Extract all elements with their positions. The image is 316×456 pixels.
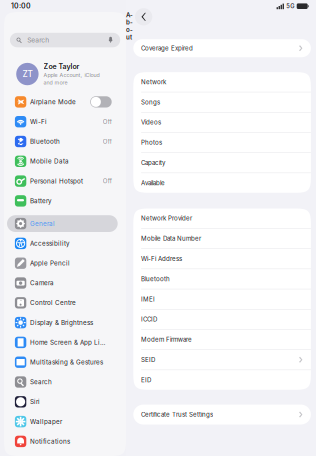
button[interactable]: Home Screen & App Library	[4, 332, 126, 352]
staticText: ICCID	[141, 316, 157, 323]
staticText: Wi-Fi	[30, 118, 47, 125]
staticText: Capacity	[141, 159, 165, 166]
button[interactable]: IMEI	[133, 289, 311, 309]
staticText: Bluetooth	[141, 275, 170, 283]
staticText: Mobile Data	[30, 157, 69, 165]
button[interactable]: Camera	[4, 273, 126, 293]
button[interactable]: Available	[133, 173, 311, 193]
staticText: About	[126, 11, 133, 41]
button[interactable]: Display & Brightness	[4, 313, 126, 332]
button[interactable]: Network Provider	[133, 208, 311, 228]
staticText: Off	[103, 177, 112, 185]
staticText: Mobile Data Number	[141, 235, 201, 242]
button[interactable]: Wi-Fi	[4, 112, 126, 132]
button[interactable]: Siri	[4, 392, 126, 412]
staticText: Siri	[30, 398, 40, 406]
button[interactable]: Videos	[133, 112, 311, 132]
staticText: Zoe Taylor	[43, 62, 79, 71]
button[interactable]: Multitasking & Gestures	[4, 352, 126, 372]
staticText: Songs	[141, 98, 160, 106]
staticText: and more	[43, 79, 67, 86]
staticText: Notifications	[30, 438, 70, 445]
button[interactable]: ICCID	[133, 309, 311, 329]
button[interactable]: Coverage Expired	[133, 39, 311, 57]
button[interactable]: Apple Pencil	[4, 253, 126, 273]
staticText: 10:00	[11, 2, 31, 10]
button[interactable]: Capacity	[133, 153, 311, 173]
button[interactable]: General	[4, 214, 126, 233]
staticText: Multitasking & Gestures	[30, 358, 103, 366]
staticText: Camera	[30, 279, 54, 287]
button[interactable]: Control Centre	[4, 293, 126, 313]
button[interactable]: Network	[133, 72, 311, 92]
button[interactable]: Mobile Data	[4, 151, 126, 171]
staticText: Available	[141, 179, 165, 187]
staticText: Certificate Trust Settings	[141, 411, 213, 418]
staticText: IMEI	[141, 295, 155, 303]
staticText: EID	[141, 376, 151, 384]
staticText: Wallpaper	[30, 418, 62, 425]
staticText: Airplane Mode	[30, 98, 76, 106]
button[interactable]: SEID	[133, 350, 311, 370]
staticText: Battery	[30, 197, 52, 205]
staticText: SEID	[141, 356, 155, 363]
staticText: Bluetooth	[30, 138, 60, 145]
staticText: Wi-Fi Address	[141, 255, 182, 262]
staticText: General	[30, 220, 55, 227]
staticText: Accessibility	[30, 240, 70, 247]
staticText: Coverage Expired	[141, 44, 193, 52]
button[interactable]: Personal Hotspot	[4, 171, 126, 191]
staticText: Control Centre	[30, 299, 76, 307]
button[interactable]: Modem Firmware	[133, 330, 311, 349]
staticText: Off	[103, 118, 112, 125]
staticText: Search	[27, 36, 49, 44]
button[interactable]: Back	[135, 8, 152, 25]
staticText: Photos	[141, 139, 162, 146]
button[interactable]: Bluetooth	[4, 132, 126, 151]
button[interactable]: Wi-Fi Address	[133, 249, 311, 269]
staticText: Apple Pencil	[30, 259, 70, 267]
staticText: Personal Hotspot	[30, 177, 83, 185]
staticText: Network	[141, 78, 166, 86]
button[interactable]: Mobile Data Number	[133, 229, 311, 248]
staticText: Videos	[141, 119, 161, 126]
staticText: Modem Firmware	[141, 336, 192, 343]
button[interactable]: EID	[133, 370, 311, 390]
button[interactable]: Notifications	[4, 431, 126, 451]
button[interactable]: ZT	[4, 56, 126, 92]
button[interactable]: Accessibility	[4, 233, 126, 253]
staticText: Network Provider	[141, 215, 192, 222]
button[interactable]: Airplane Mode	[4, 92, 126, 112]
staticText: Display & Brightness	[30, 319, 93, 326]
staticText: Home Screen & App Library	[30, 339, 108, 346]
button[interactable]: Songs	[133, 92, 311, 112]
staticText: ZT	[22, 69, 32, 79]
button[interactable]: Bluetooth	[133, 269, 311, 289]
button[interactable]: Search	[4, 372, 126, 392]
staticText: Apple Account, iCloud	[43, 72, 99, 78]
staticText: Search	[30, 378, 52, 386]
staticText: Off	[103, 138, 112, 145]
button[interactable]: Battery	[4, 191, 126, 211]
button[interactable]: Wallpaper	[4, 412, 126, 431]
button[interactable]: Certificate Trust Settings	[133, 405, 311, 424]
staticText: 5G	[286, 3, 294, 10]
button[interactable]: Photos	[133, 133, 311, 152]
